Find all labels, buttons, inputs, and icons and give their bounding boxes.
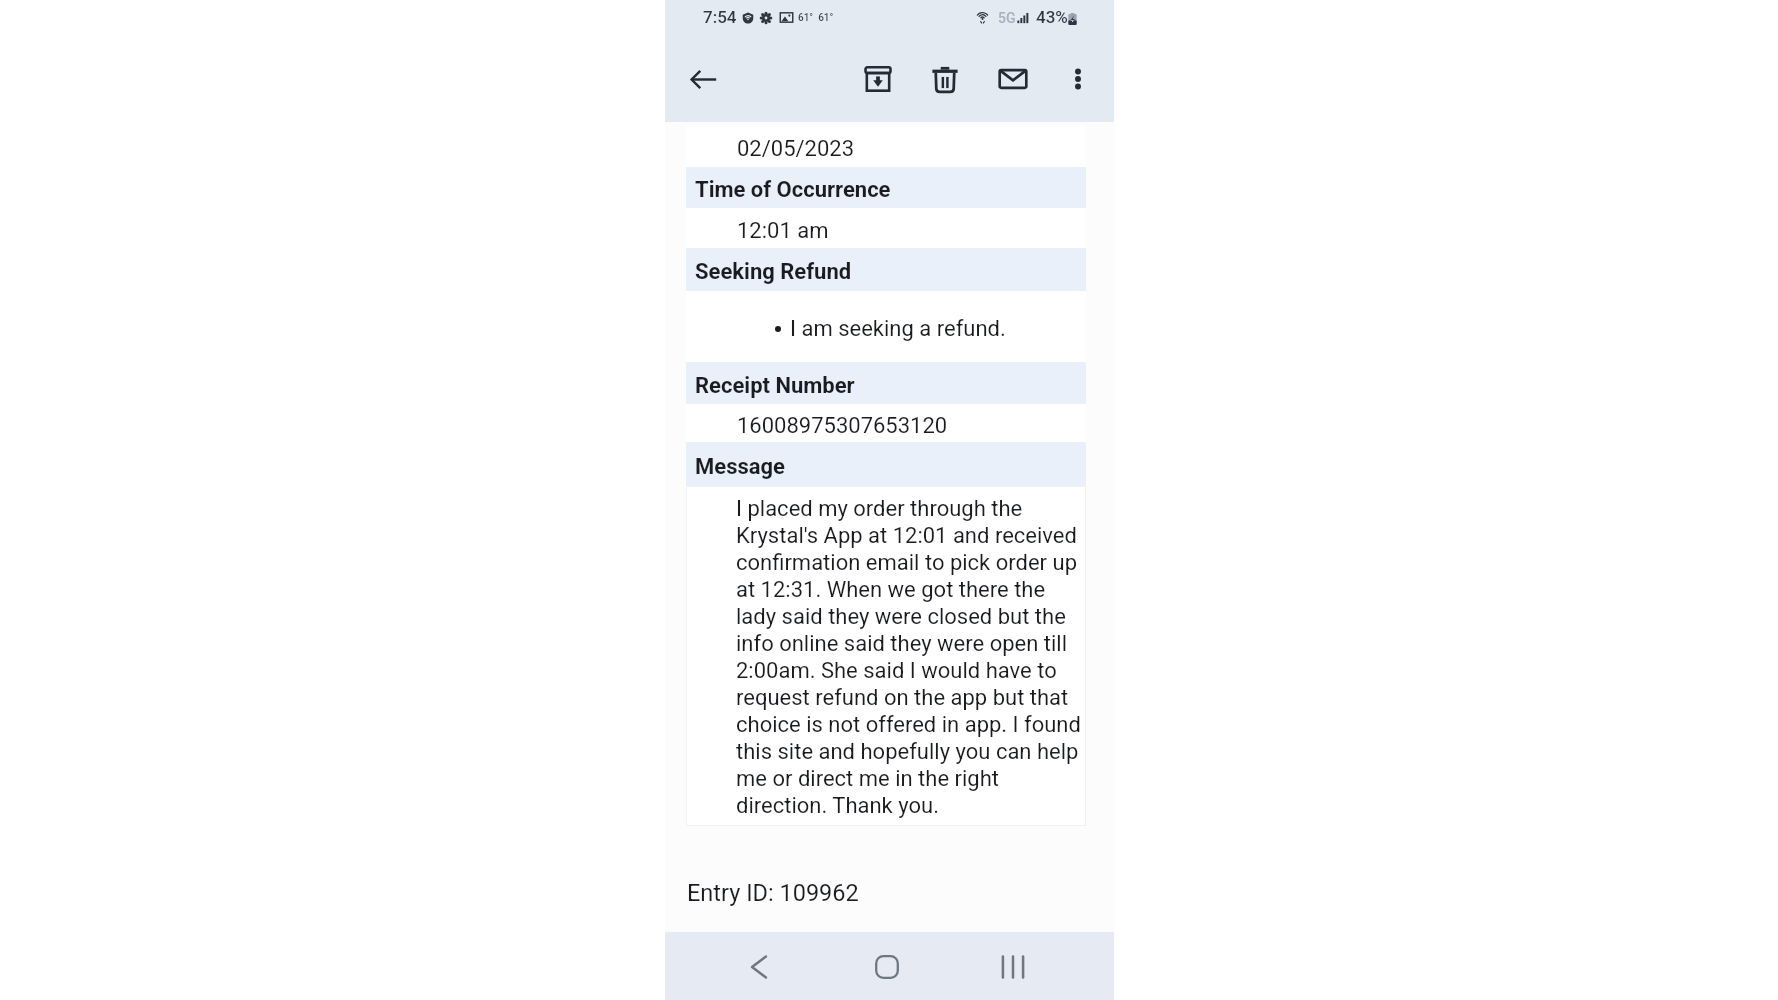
staticText: 43% [1036,7,1068,27]
staticText: I placed my order through the Krystal's … [736,495,1085,819]
staticText: 02/05/2023 [737,135,855,162]
button[interactable]: Recents [983,937,1043,997]
button[interactable]: Back [679,55,727,103]
button[interactable]: Back [729,937,789,997]
staticText: Time of Occurrence [695,176,891,203]
staticText: I am seeking a refund. [790,315,1006,342]
staticText: Message [695,453,785,480]
button[interactable]: Archive [854,55,902,103]
staticText: 5G [998,10,1016,26]
button[interactable]: More options [1054,55,1102,103]
staticText: 7:54 [703,7,737,27]
staticText: Entry ID: 109962 [687,878,859,907]
button[interactable]: Mark unread [989,55,1037,103]
staticText: 16008975307653120 [737,412,948,439]
staticText: Receipt Number [695,372,855,399]
staticText: Seeking Refund [695,258,852,285]
staticText: 61° 61° [798,12,834,24]
staticText: 12:01 am [737,217,829,244]
button[interactable]: Home [857,937,917,997]
button[interactable]: Delete [921,55,969,103]
